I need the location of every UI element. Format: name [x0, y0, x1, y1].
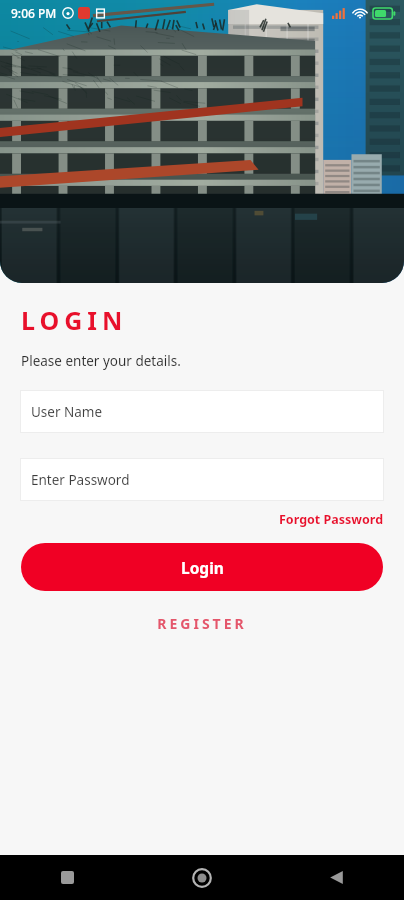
button[interactable]: Forgot Password [279, 509, 404, 530]
staticText: User Name [31, 403, 103, 421]
button[interactable]: Home [134, 855, 269, 900]
staticText: Please enter your details. [21, 352, 181, 370]
staticText: 9:06 PM [11, 5, 57, 21]
button[interactable]: Login [21, 543, 383, 591]
button[interactable]: Enter Password [20, 458, 384, 501]
button[interactable]: Recent apps [0, 855, 134, 900]
button[interactable]: Back [269, 855, 404, 900]
button[interactable]: User Name [20, 390, 384, 433]
staticText: LOGIN [21, 303, 128, 337]
staticText: Forgot Password [279, 511, 384, 528]
staticText: Enter Password [31, 471, 130, 489]
button[interactable]: REGISTER [141, 609, 263, 638]
staticText: Login [181, 557, 224, 578]
staticText: REGISTER [157, 614, 247, 633]
